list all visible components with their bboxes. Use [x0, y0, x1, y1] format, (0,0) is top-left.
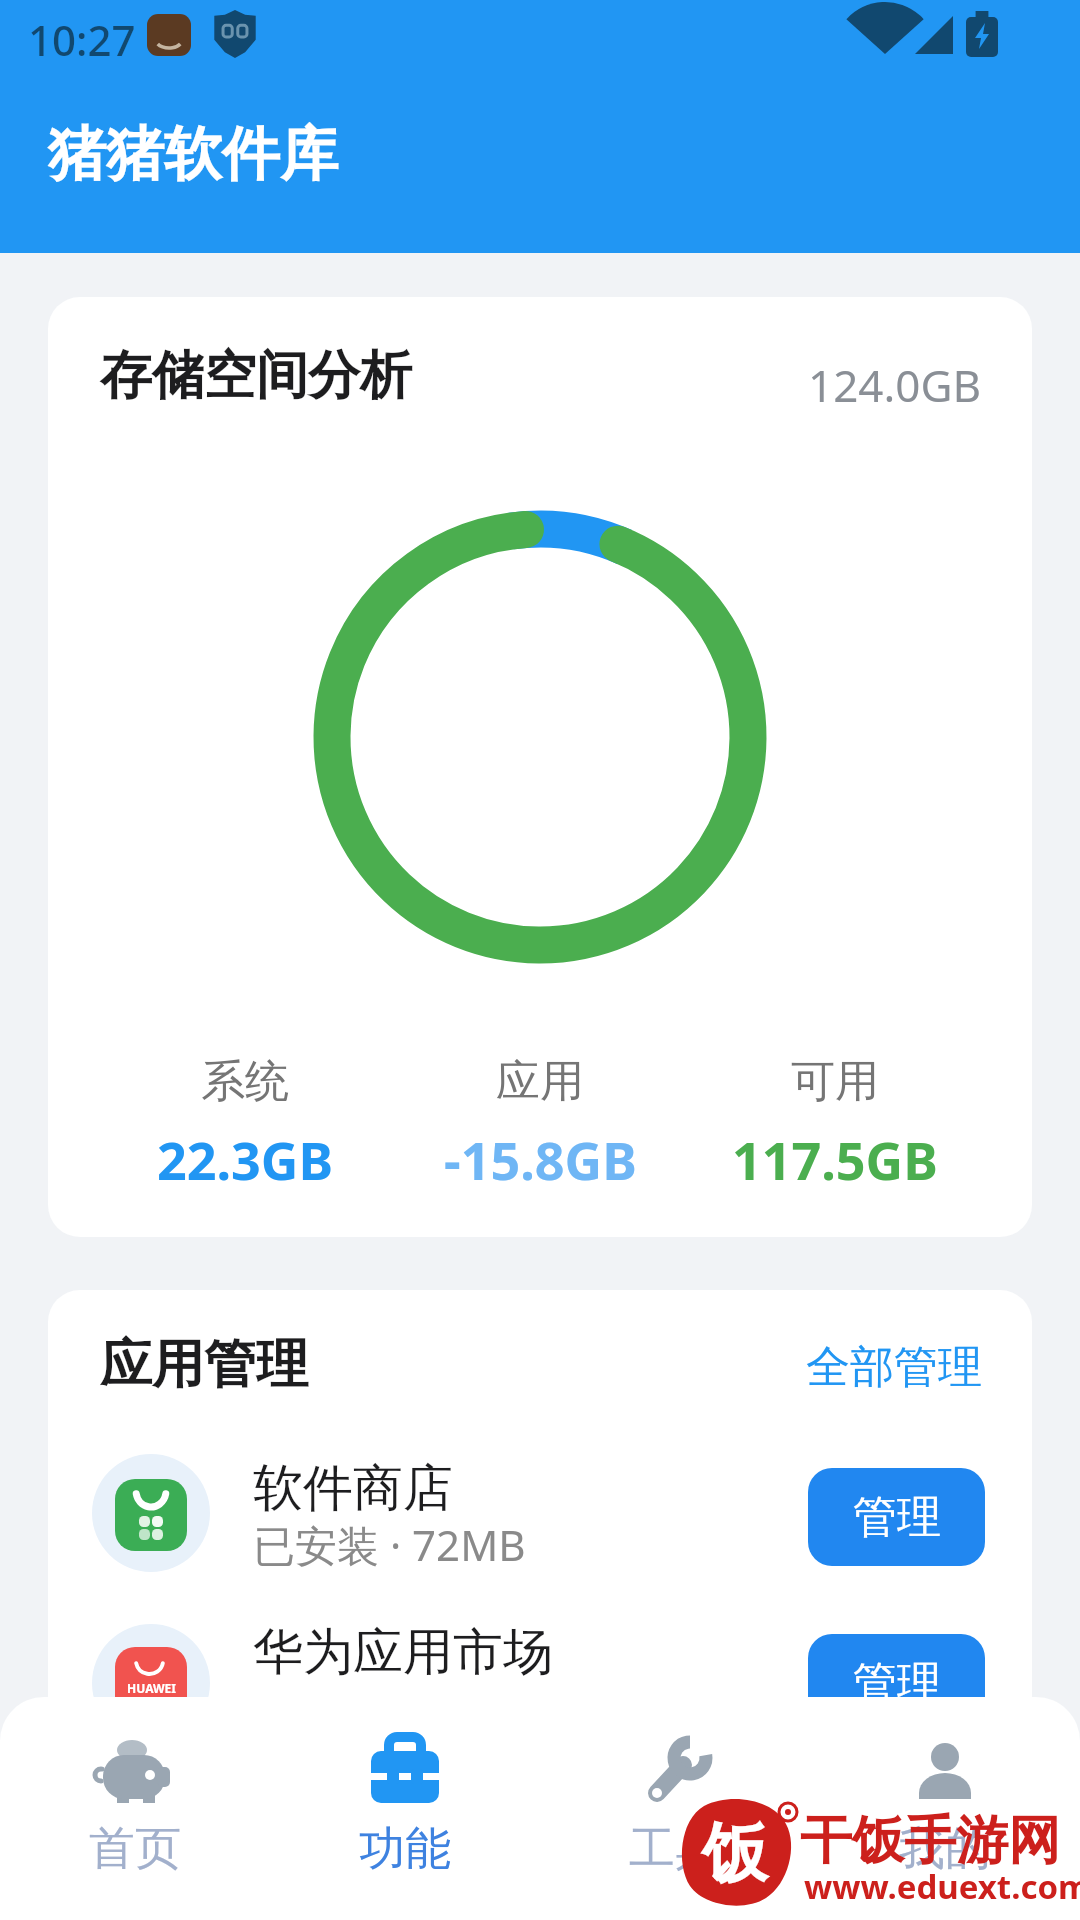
staticText: 应用管理: [100, 1332, 308, 1398]
button[interactable]: 工具: [540, 1697, 810, 1917]
staticText: 10:27: [28, 11, 136, 68]
staticText: 系统: [201, 1054, 289, 1109]
staticText: 华为应用市场: [253, 1621, 553, 1684]
staticText: 软件商店: [253, 1457, 453, 1520]
button[interactable]: 全部管理: [682, 1340, 982, 1395]
staticText: 工具: [629, 1820, 721, 1878]
button[interactable]: 管理: [808, 1468, 985, 1566]
button[interactable]: 管理: [808, 1634, 985, 1732]
staticText: 干饭手游网: [800, 1808, 1060, 1874]
staticText: 功能: [359, 1820, 451, 1878]
staticText: 全部管理: [806, 1340, 982, 1395]
staticText: 我的: [899, 1820, 991, 1878]
staticText: 可用: [791, 1054, 879, 1109]
staticText: -15.8GB: [444, 1124, 637, 1195]
staticText: 117.5GB: [732, 1124, 938, 1195]
staticText: 饭: [702, 1812, 768, 1895]
staticText: 猪猪软件库: [48, 118, 338, 191]
staticText: 首页: [89, 1820, 181, 1878]
staticText: 已安装 · 72MB: [253, 1516, 526, 1573]
button[interactable]: 功能: [270, 1697, 540, 1917]
staticText: 管理: [853, 1656, 941, 1711]
staticText: 22.3GB: [157, 1124, 334, 1195]
staticText: 124.0GB: [808, 355, 982, 415]
button[interactable]: 我的: [810, 1697, 1080, 1917]
staticText: 存储空间分析: [100, 343, 412, 409]
staticText: 管理: [853, 1490, 941, 1545]
staticText: www.eduext.com: [804, 1864, 1080, 1909]
staticText: 应用: [496, 1054, 584, 1109]
staticText: 已安装 · 56MB: [253, 1688, 526, 1745]
staticText: HUAWEI: [127, 1680, 176, 1696]
button[interactable]: 首页: [0, 1697, 270, 1917]
